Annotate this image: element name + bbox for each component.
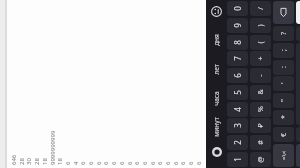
button[interactable]: 4 bbox=[227, 102, 248, 117]
button[interactable]: * bbox=[273, 110, 294, 125]
button[interactable]: ( bbox=[250, 35, 271, 50]
staticText: 18 bbox=[41, 158, 49, 165]
staticText: + bbox=[256, 56, 266, 61]
staticText: 6 bbox=[164, 161, 172, 165]
button[interactable]: дня bbox=[206, 26, 227, 55]
staticText: 6 bbox=[110, 161, 118, 165]
staticText: 4 bbox=[72, 161, 80, 165]
button[interactable]: / bbox=[250, 1, 271, 16]
button[interactable]: ? bbox=[273, 26, 294, 41]
staticText: € bbox=[279, 132, 289, 137]
button[interactable]: ) bbox=[250, 18, 271, 33]
staticText: # bbox=[256, 140, 266, 145]
staticText: 28 bbox=[33, 158, 41, 165]
staticText: 6 bbox=[141, 161, 149, 165]
button[interactable]: : bbox=[273, 60, 294, 75]
button[interactable]: Google bbox=[206, 142, 227, 163]
staticText: 6 bbox=[232, 73, 243, 78]
staticText: 6 bbox=[64, 161, 72, 165]
staticText: 6 bbox=[149, 161, 157, 165]
button[interactable]: 0 bbox=[227, 1, 248, 16]
button[interactable]: АБВ bbox=[296, 144, 300, 167]
staticText: =\< bbox=[280, 150, 288, 160]
button[interactable]: € bbox=[273, 127, 294, 142]
staticText: 6 bbox=[133, 161, 141, 165]
staticText: 28 bbox=[18, 158, 26, 165]
button[interactable]: 8 bbox=[227, 35, 248, 50]
staticText: ; bbox=[279, 49, 289, 51]
button[interactable]: & bbox=[250, 85, 271, 100]
button[interactable]: 2 bbox=[227, 135, 248, 150]
staticText: часа bbox=[212, 91, 221, 106]
button[interactable]: =\< bbox=[273, 144, 294, 167]
button[interactable]: 3 bbox=[227, 118, 248, 133]
staticText: & bbox=[256, 89, 266, 95]
button[interactable]: 7 bbox=[227, 51, 248, 66]
button[interactable]: # bbox=[250, 135, 271, 150]
button[interactable]: , bbox=[296, 127, 300, 142]
staticText: 6 bbox=[179, 161, 187, 165]
staticText: 7 bbox=[232, 56, 243, 61]
staticText: 4 bbox=[232, 107, 243, 112]
staticText: лет bbox=[212, 64, 221, 75]
staticText: * bbox=[279, 115, 289, 119]
staticText: минут bbox=[212, 117, 221, 137]
staticText: 6 bbox=[102, 161, 110, 165]
button[interactable]: 6 bbox=[227, 68, 248, 83]
staticText: 6 bbox=[172, 161, 180, 165]
staticText: 6 bbox=[187, 161, 195, 165]
staticText: 6 bbox=[195, 161, 203, 165]
staticText: 30 bbox=[25, 158, 33, 165]
button[interactable]: ; bbox=[273, 43, 294, 58]
staticText: ? bbox=[279, 31, 289, 35]
button[interactable]: 1 bbox=[227, 152, 248, 167]
staticText: 5 bbox=[232, 90, 243, 95]
staticText: 646 bbox=[10, 154, 18, 165]
staticText: 6 bbox=[156, 161, 164, 165]
staticText: 6 bbox=[79, 161, 87, 165]
staticText: / bbox=[256, 7, 266, 10]
button[interactable]: Emoji bbox=[206, 0, 227, 23]
staticText: " bbox=[279, 99, 289, 102]
button[interactable]: + bbox=[250, 51, 271, 66]
staticText: ' bbox=[279, 82, 289, 84]
staticText: ) bbox=[256, 24, 266, 27]
staticText: 18 bbox=[56, 158, 64, 165]
button[interactable]: ' bbox=[273, 76, 294, 91]
staticText: 1 bbox=[232, 157, 243, 162]
staticText: - bbox=[256, 74, 266, 77]
button[interactable]: 5 bbox=[227, 85, 248, 100]
button[interactable]: @ bbox=[250, 152, 271, 167]
staticText: 2 bbox=[232, 140, 243, 145]
staticText: дня bbox=[212, 34, 221, 46]
staticText: % bbox=[256, 106, 266, 112]
staticText: ( bbox=[256, 41, 266, 44]
staticText: 8 bbox=[232, 40, 243, 45]
staticText: 9 bbox=[232, 23, 243, 28]
button[interactable]: минут bbox=[206, 113, 227, 142]
staticText: 6 bbox=[95, 161, 103, 165]
staticText: ₽ bbox=[256, 123, 266, 128]
button[interactable]: - bbox=[250, 68, 271, 83]
staticText: 6 bbox=[87, 161, 95, 165]
staticText: : bbox=[279, 66, 289, 68]
button[interactable]: лет bbox=[206, 55, 227, 84]
staticText: 6 bbox=[118, 161, 126, 165]
button[interactable]: часа bbox=[206, 84, 227, 113]
staticText: @ bbox=[256, 156, 266, 163]
button[interactable]: 9 bbox=[227, 18, 248, 33]
button[interactable]: ₽ bbox=[250, 118, 271, 133]
button[interactable]: Backspace bbox=[273, 1, 294, 24]
staticText: 0 bbox=[232, 6, 243, 11]
button[interactable]: Enter bbox=[296, 1, 300, 24]
staticText: 9999999999 bbox=[49, 130, 57, 165]
button[interactable]: % bbox=[250, 102, 271, 117]
staticText: 6 bbox=[126, 161, 134, 165]
button[interactable]: " bbox=[273, 93, 294, 108]
button[interactable]: . bbox=[296, 26, 300, 41]
staticText: 3 bbox=[232, 123, 243, 128]
